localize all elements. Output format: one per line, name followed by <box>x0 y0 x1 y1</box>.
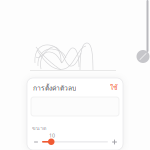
staticText: การตั้งค่าตัวลบ <box>33 83 76 93</box>
staticText: ใช้ <box>110 82 118 93</box>
button[interactable]: Decrease size <box>31 137 41 147</box>
staticText: ขนาด <box>32 124 46 132</box>
button[interactable]: Eraser tool <box>136 50 149 63</box>
staticText: 10 <box>49 132 55 139</box>
button[interactable]: ใช้ <box>104 83 118 92</box>
button[interactable]: Increase size <box>109 137 119 147</box>
